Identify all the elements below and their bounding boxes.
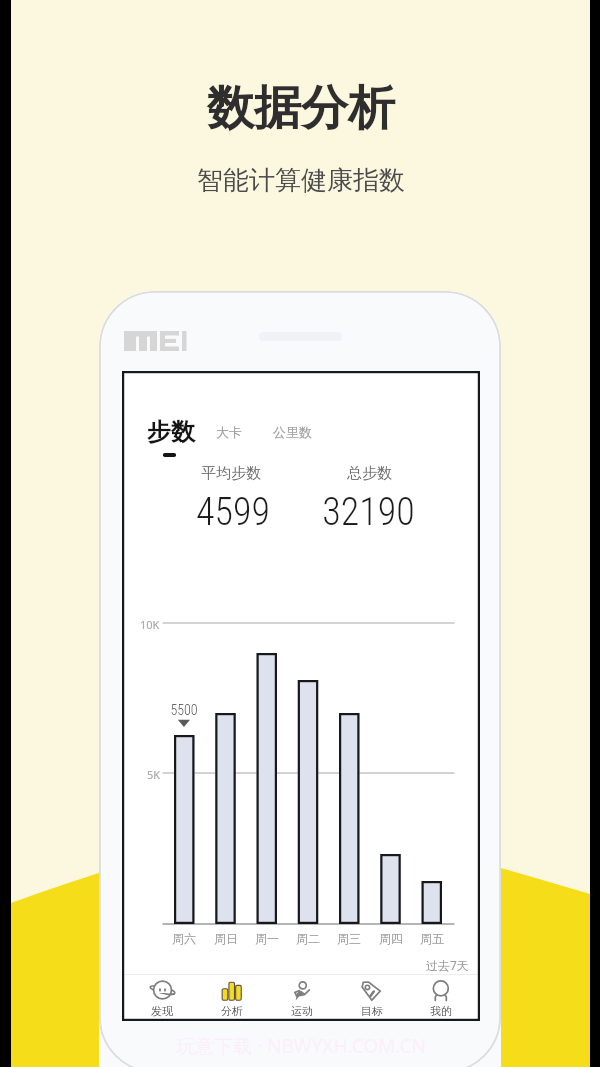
staticText: 大卡 xyxy=(216,424,242,440)
staticText: 分析 xyxy=(221,1004,243,1018)
staticText: 过去7天 xyxy=(426,957,469,973)
staticText: 平均步数 xyxy=(201,464,261,483)
staticText: 周日 xyxy=(214,931,238,946)
staticText: 公里数 xyxy=(273,424,312,440)
staticText: 周一 xyxy=(255,931,279,946)
staticText: 智能计算健康指数 xyxy=(197,164,405,197)
staticText: 步数 xyxy=(147,417,195,447)
button[interactable]: 我的 xyxy=(405,975,475,1022)
staticText: 4599 xyxy=(196,490,270,535)
button[interactable]: 分析 xyxy=(196,975,266,1022)
staticText: 5500 xyxy=(170,702,198,718)
staticText: 32190 xyxy=(322,490,415,535)
staticText: 周四 xyxy=(379,931,403,946)
staticText: 玩意下载 · NBWYXH.COM.CN xyxy=(176,1033,426,1059)
staticText: 周二 xyxy=(296,931,320,946)
staticText: 运动 xyxy=(291,1004,313,1018)
staticText: 发现 xyxy=(151,1004,173,1018)
staticText: 周三 xyxy=(337,931,361,946)
staticText: 我的 xyxy=(430,1004,452,1018)
button[interactable]: 大卡 xyxy=(216,424,242,440)
staticText: 总步数 xyxy=(347,464,392,483)
staticText: 目标 xyxy=(361,1004,383,1018)
staticText: 数据分析 xyxy=(207,79,395,138)
staticText: 5K xyxy=(147,767,161,782)
staticText: 10K xyxy=(140,617,160,632)
button[interactable]: 步数 xyxy=(147,417,195,457)
button[interactable]: 运动 xyxy=(266,975,336,1022)
button[interactable]: 公里数 xyxy=(273,424,312,440)
button[interactable]: 发现 xyxy=(126,975,196,1022)
button[interactable]: 目标 xyxy=(336,975,406,1022)
staticText: 周六 xyxy=(172,931,196,946)
staticText: 周五 xyxy=(420,931,444,946)
